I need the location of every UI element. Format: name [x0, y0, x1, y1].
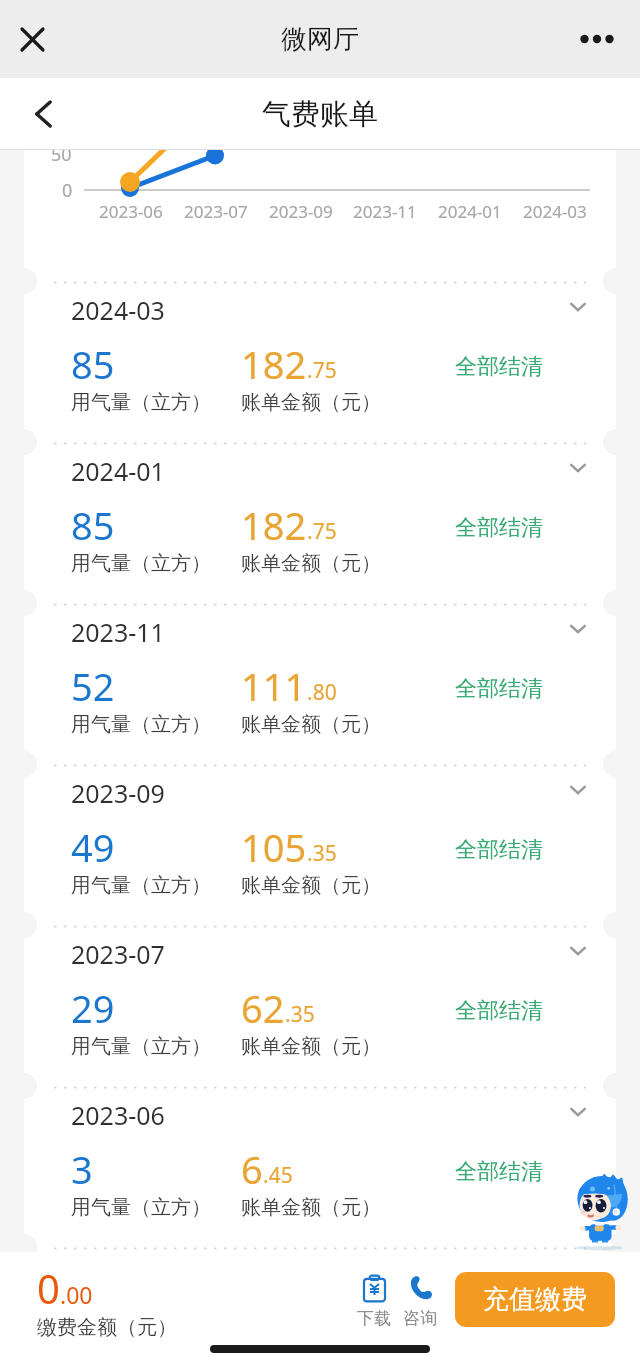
staticText: 账单金额（元）	[241, 712, 381, 737]
staticText: 缴费金额（元）	[37, 1315, 177, 1340]
staticText: 气费账单	[262, 96, 378, 133]
staticText: 2023-11	[353, 200, 417, 223]
button[interactable]: Expand 2023-07	[556, 929, 600, 973]
staticText: .80	[307, 678, 337, 707]
button[interactable]: More options	[570, 12, 624, 66]
button[interactable]: Back	[16, 88, 68, 140]
staticText: 全部结清	[455, 675, 543, 703]
staticText: 用气量（立方）	[71, 390, 211, 415]
staticText: 用气量（立方）	[71, 873, 211, 898]
staticText: 2023-07	[184, 200, 248, 223]
staticText: .35	[285, 1000, 315, 1029]
button[interactable]: 2023-11	[0, 603, 640, 764]
staticText: .75	[307, 356, 337, 385]
staticText: 全部结清	[455, 836, 543, 864]
staticText: 182	[241, 338, 307, 390]
staticText: 52	[71, 660, 115, 712]
staticText: 充值缴费	[483, 1283, 587, 1316]
staticText: 账单金额（元）	[241, 1195, 381, 1220]
button[interactable]: Expand 2023-09	[556, 768, 600, 812]
button[interactable]: Consult	[396, 1275, 444, 1329]
button[interactable]: 充值缴费	[455, 1272, 615, 1327]
staticText: 用气量（立方）	[71, 1195, 211, 1220]
staticText: 全部结清	[455, 514, 543, 542]
staticText: .75	[307, 517, 337, 546]
staticText: 29	[71, 982, 115, 1034]
staticText: 49	[71, 821, 115, 873]
staticText: 用气量（立方）	[71, 712, 211, 737]
staticText: 2023-06	[71, 1098, 165, 1132]
staticText: 2023-09	[269, 200, 333, 223]
staticText: .45	[263, 1161, 293, 1190]
staticText: 2024-03	[71, 293, 165, 327]
button[interactable]: Download	[350, 1275, 398, 1329]
staticText: 105	[241, 821, 307, 873]
button[interactable]: Expand 2024-03	[556, 285, 600, 329]
button[interactable]: Expand 2023-11	[556, 607, 600, 651]
staticText: 85	[71, 338, 115, 390]
staticText: 全部结清	[455, 997, 543, 1025]
staticText: 用气量（立方）	[71, 1034, 211, 1059]
staticText: 0	[62, 178, 73, 203]
staticText: .00	[60, 1279, 93, 1310]
staticText: 账单金额（元）	[241, 1034, 381, 1059]
staticText: 62	[241, 982, 285, 1034]
staticText: 85	[71, 499, 115, 551]
staticText: 咨询	[403, 1308, 437, 1329]
staticText: 微网厅	[281, 23, 359, 56]
staticText: 2023-07	[71, 937, 165, 971]
staticText: .35	[307, 839, 337, 868]
staticText: 111	[241, 660, 307, 712]
staticText: 50	[51, 150, 72, 167]
button[interactable]: 2023-09	[0, 764, 640, 925]
staticText: 6	[241, 1143, 263, 1195]
staticText: 3	[71, 1143, 93, 1195]
button[interactable]: 2023-06	[0, 1086, 640, 1247]
button[interactable]: Expand 2023-06	[556, 1090, 600, 1134]
staticText: 2024-01	[438, 200, 502, 223]
staticText: 2023-11	[71, 615, 165, 649]
staticText: 2023-06	[99, 200, 163, 223]
button[interactable]: 2024-01	[0, 442, 640, 603]
button[interactable]: Expand 2024-01	[556, 446, 600, 490]
staticText: 2024-03	[523, 200, 587, 223]
button[interactable]: 2024-03	[0, 281, 640, 442]
staticText: 全部结清	[455, 1158, 543, 1186]
staticText: 账单金额（元）	[241, 873, 381, 898]
button[interactable]: Close	[5, 12, 59, 66]
staticText: 全部结清	[455, 353, 543, 381]
button[interactable]: 2023-07	[0, 925, 640, 1086]
staticText: 2024-01	[71, 454, 165, 488]
staticText: 下载	[357, 1308, 391, 1329]
staticText: 2023-09	[71, 776, 165, 810]
staticText: 0	[37, 1261, 60, 1315]
staticText: 182	[241, 499, 307, 551]
staticText: 账单金额（元）	[241, 390, 381, 415]
staticText: 账单金额（元）	[241, 551, 381, 576]
staticText: 用气量（立方）	[71, 551, 211, 576]
